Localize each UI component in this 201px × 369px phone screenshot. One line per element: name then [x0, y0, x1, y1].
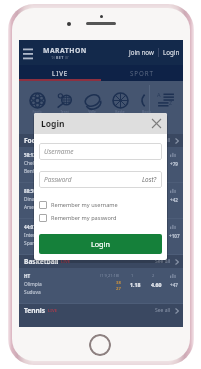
button[interactable]: Join now — [125, 44, 158, 60]
staticText: Suduva — [24, 289, 41, 296]
staticText: Football — [24, 136, 51, 145]
staticText: Login — [91, 239, 110, 249]
staticText: 1.18 — [130, 281, 141, 288]
button[interactable]: 58:12 — [19, 147, 183, 183]
staticText: MARATHON — [43, 46, 87, 55]
staticText: Boxin — [142, 109, 151, 114]
staticText: 58:12 — [24, 152, 36, 158]
staticText: Arsenal — [24, 204, 41, 211]
staticText: Login — [41, 118, 65, 130]
staticText: SPORT — [130, 69, 154, 77]
button[interactable]: Close — [151, 118, 162, 129]
staticText: 88:30 — [24, 188, 36, 194]
staticText: Volle — [88, 109, 96, 114]
button[interactable]: SPORT — [101, 65, 183, 81]
button[interactable]: 44:07 — [19, 219, 183, 255]
button[interactable]: HT — [19, 268, 183, 304]
staticText: Join now — [129, 48, 154, 56]
staticText: Benfica — [24, 168, 41, 175]
button[interactable]: Boxing — [135, 86, 157, 118]
button[interactable]: Remember my username — [39, 200, 162, 209]
staticText: Spartak — [24, 240, 42, 247]
staticText: 27 — [116, 286, 121, 292]
staticText: Z — [169, 99, 173, 106]
staticText: 4.20 — [151, 232, 162, 239]
staticText: 38 — [116, 280, 121, 286]
button[interactable]: Football — [26, 86, 48, 118]
staticText: +47 — [170, 282, 178, 288]
staticText: 1.75 — [130, 232, 141, 239]
staticText: +79 — [170, 161, 178, 167]
button[interactable]: Menu — [21, 46, 35, 60]
staticText: Username — [44, 147, 74, 156]
staticText: Remember my password — [51, 214, 117, 222]
button[interactable]: Football — [19, 134, 183, 147]
staticText: 4.60 — [151, 281, 162, 288]
staticText: (0' — [65, 56, 69, 60]
staticText: Chelsea — [24, 160, 42, 167]
button[interactable]: Tennis — [53, 86, 75, 118]
staticText: A — [157, 91, 161, 98]
staticText: See all — [155, 307, 171, 314]
staticText: Lost? — [142, 175, 157, 184]
staticText: 1 — [131, 273, 134, 278]
button[interactable]: Home — [89, 334, 111, 356]
staticText: Basketball — [24, 257, 59, 266]
staticText: Baske — [115, 109, 125, 114]
staticText: LIVE — [48, 308, 58, 314]
staticText: HT — [24, 273, 31, 279]
button[interactable]: 88:30 — [19, 183, 183, 219]
staticText: Login — [163, 48, 180, 56]
button[interactable]: Basketball — [19, 255, 183, 268]
button[interactable]: Tennis — [19, 304, 183, 327]
staticText: LIVE — [52, 69, 69, 77]
staticText: Dinamo — [24, 196, 42, 203]
button[interactable]: Username — [39, 143, 162, 160]
staticText: +42 — [170, 197, 178, 203]
staticText: +107 — [169, 233, 180, 239]
staticText: Inter — [24, 232, 36, 239]
button[interactable]: Sort A to Z — [157, 91, 175, 109]
staticText: Tennis — [24, 306, 46, 315]
staticText: See all — [155, 258, 171, 265]
staticText: Tenni — [60, 109, 69, 114]
staticText: (1 9,21:18) — [100, 273, 120, 278]
staticText: Password — [44, 175, 72, 184]
button[interactable]: LIVE — [19, 65, 101, 81]
staticText: 44:07 — [24, 224, 36, 230]
staticText: '0) — [51, 56, 55, 60]
button[interactable]: Remember my password — [39, 213, 162, 222]
staticText: Remember my username — [51, 201, 118, 209]
staticText: LIVE — [53, 138, 63, 144]
staticText: 2 — [152, 273, 155, 278]
button[interactable]: Volleyball — [81, 86, 103, 118]
staticText: Footb — [32, 109, 42, 114]
staticText: See all — [155, 137, 171, 144]
button[interactable]: Lost? — [137, 172, 162, 187]
staticText: Olimpia — [24, 281, 42, 288]
button[interactable]: Login — [159, 44, 183, 60]
staticText: LIVE — [61, 259, 71, 265]
staticText: BET — [56, 55, 64, 60]
button[interactable]: Login — [39, 234, 162, 254]
button[interactable]: Password — [39, 171, 162, 188]
button[interactable]: Basketball — [109, 86, 131, 118]
